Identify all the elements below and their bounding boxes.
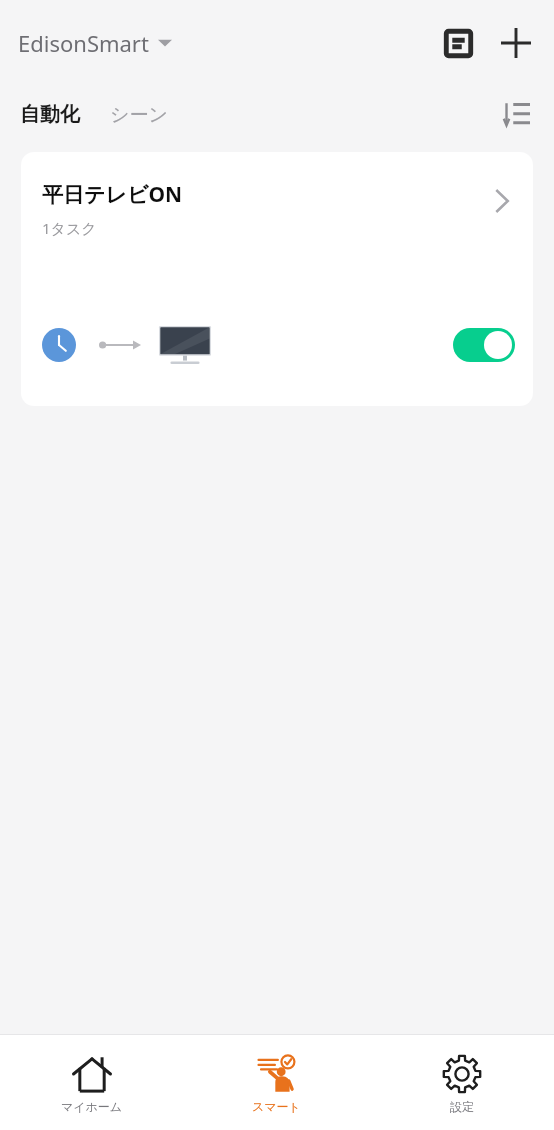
staticText: 自動化 bbox=[20, 102, 80, 127]
staticText: 設定 bbox=[450, 1099, 474, 1114]
button[interactable]: Logs bbox=[432, 17, 484, 69]
button[interactable]: スマート bbox=[184, 1035, 369, 1130]
button[interactable]: Automation enabled bbox=[453, 328, 515, 362]
button[interactable]: EdisonSmart bbox=[14, 24, 176, 62]
button[interactable]: Add bbox=[490, 17, 542, 69]
staticText: マイホーム bbox=[61, 1099, 123, 1114]
button[interactable]: マイホーム bbox=[0, 1035, 184, 1130]
button[interactable]: 平日テレビON bbox=[21, 152, 533, 406]
button[interactable]: 設定 bbox=[369, 1035, 554, 1130]
staticText: 平日テレビON bbox=[42, 180, 183, 209]
button[interactable]: シーン bbox=[102, 97, 176, 133]
button[interactable]: Sort bbox=[492, 90, 540, 138]
staticText: EdisonSmart bbox=[18, 28, 149, 58]
button[interactable]: 自動化 bbox=[12, 96, 88, 133]
staticText: シーン bbox=[110, 103, 168, 127]
button[interactable]: Open details bbox=[481, 180, 523, 222]
staticText: 1タスク bbox=[42, 218, 97, 238]
staticText: スマート bbox=[252, 1099, 301, 1114]
